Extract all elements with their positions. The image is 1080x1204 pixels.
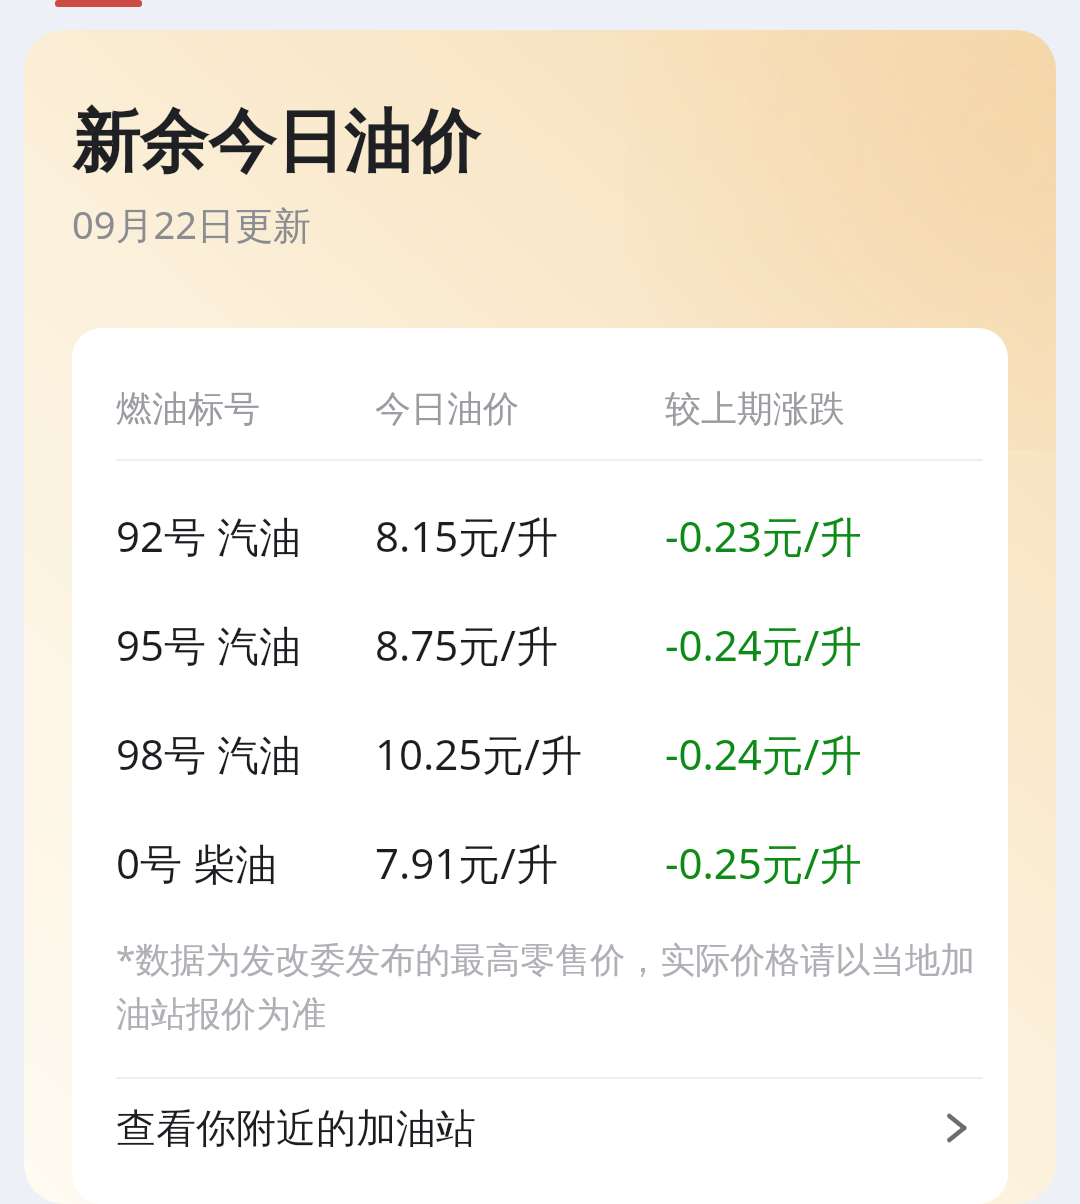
button[interactable]: 92号 汽油 bbox=[72, 507, 1008, 564]
staticText: -0.23元/升 bbox=[665, 507, 862, 564]
button[interactable]: 查看你附近的加油站 bbox=[72, 1079, 1008, 1177]
staticText: 98号 汽油 bbox=[116, 725, 301, 782]
button[interactable]: 0号 柴油 bbox=[72, 834, 1008, 891]
staticText: -0.24元/升 bbox=[665, 725, 862, 782]
staticText: 新余今日油价 bbox=[72, 100, 480, 186]
staticText: 0号 柴油 bbox=[116, 834, 277, 891]
button[interactable]: 95号 汽油 bbox=[72, 616, 1008, 673]
other: 查看你附近的加油站 bbox=[945, 1108, 969, 1148]
staticText: 8.15元/升 bbox=[375, 507, 558, 564]
staticText: -0.25元/升 bbox=[665, 834, 862, 891]
staticText: 查看你附近的加油站 bbox=[116, 1103, 476, 1153]
staticText: 92号 汽油 bbox=[116, 507, 301, 564]
staticText: 燃油标号 bbox=[116, 386, 260, 431]
staticText: 7.91元/升 bbox=[375, 834, 558, 891]
staticText: -0.24元/升 bbox=[665, 616, 862, 673]
staticText: 今日油价 bbox=[375, 386, 519, 431]
staticText: 较上期涨跌 bbox=[665, 386, 845, 431]
staticText: 8.75元/升 bbox=[375, 616, 558, 673]
staticText: *数据为发改委发布的最高零售价，实际价格请以当地加油站报价为准 bbox=[116, 935, 983, 1037]
button[interactable]: 98号 汽油 bbox=[72, 725, 1008, 782]
staticText: 09月22日更新 bbox=[72, 198, 311, 250]
staticText: 95号 汽油 bbox=[116, 616, 301, 673]
staticText: 10.25元/升 bbox=[375, 725, 582, 782]
